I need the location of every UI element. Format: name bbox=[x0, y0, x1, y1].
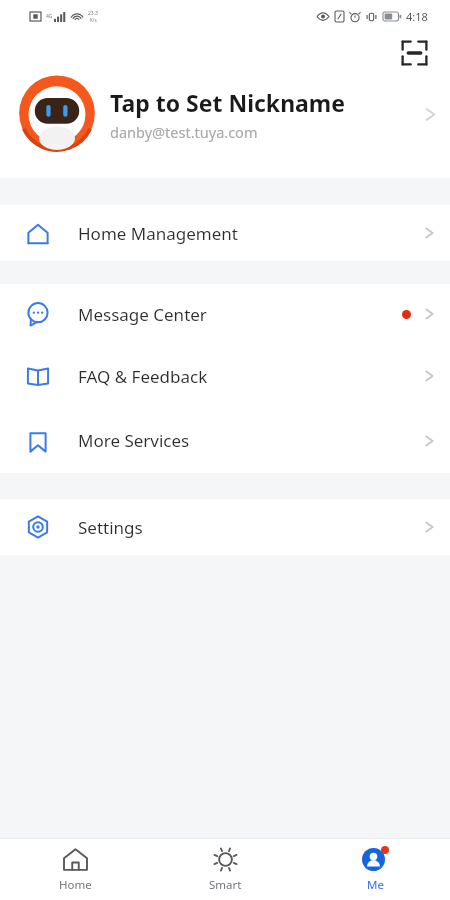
staticText: Smart bbox=[209, 877, 242, 893]
button[interactable]: Home bbox=[0, 839, 150, 900]
staticText: danby@test.tuya.com bbox=[110, 122, 258, 142]
button[interactable]: Tap to Set Nickname bbox=[0, 73, 450, 155]
button[interactable]: Settings bbox=[0, 499, 450, 555]
staticText: 4:18 bbox=[406, 9, 428, 24]
staticText: More Services bbox=[78, 429, 190, 452]
button[interactable]: Home Management bbox=[0, 205, 450, 261]
button[interactable]: Smart bbox=[150, 839, 300, 900]
staticText: 4G bbox=[46, 13, 53, 20]
button[interactable]: Me bbox=[300, 839, 450, 900]
staticText: 23.3 bbox=[88, 10, 98, 17]
staticText: Me bbox=[367, 877, 384, 893]
staticText: K/s bbox=[90, 17, 97, 23]
button[interactable]: FAQ & Feedback bbox=[0, 344, 450, 408]
staticText: Settings bbox=[78, 516, 143, 539]
staticText: Home bbox=[59, 877, 92, 893]
staticText: FAQ & Feedback bbox=[78, 365, 208, 388]
staticText: Tap to Set Nickname bbox=[110, 87, 346, 118]
button[interactable]: More Services bbox=[0, 408, 450, 473]
button[interactable]: Message Center bbox=[0, 284, 450, 344]
button[interactable]: Scan QR code bbox=[392, 32, 436, 73]
staticText: Home Management bbox=[78, 222, 238, 245]
staticText: Message Center bbox=[78, 303, 207, 326]
